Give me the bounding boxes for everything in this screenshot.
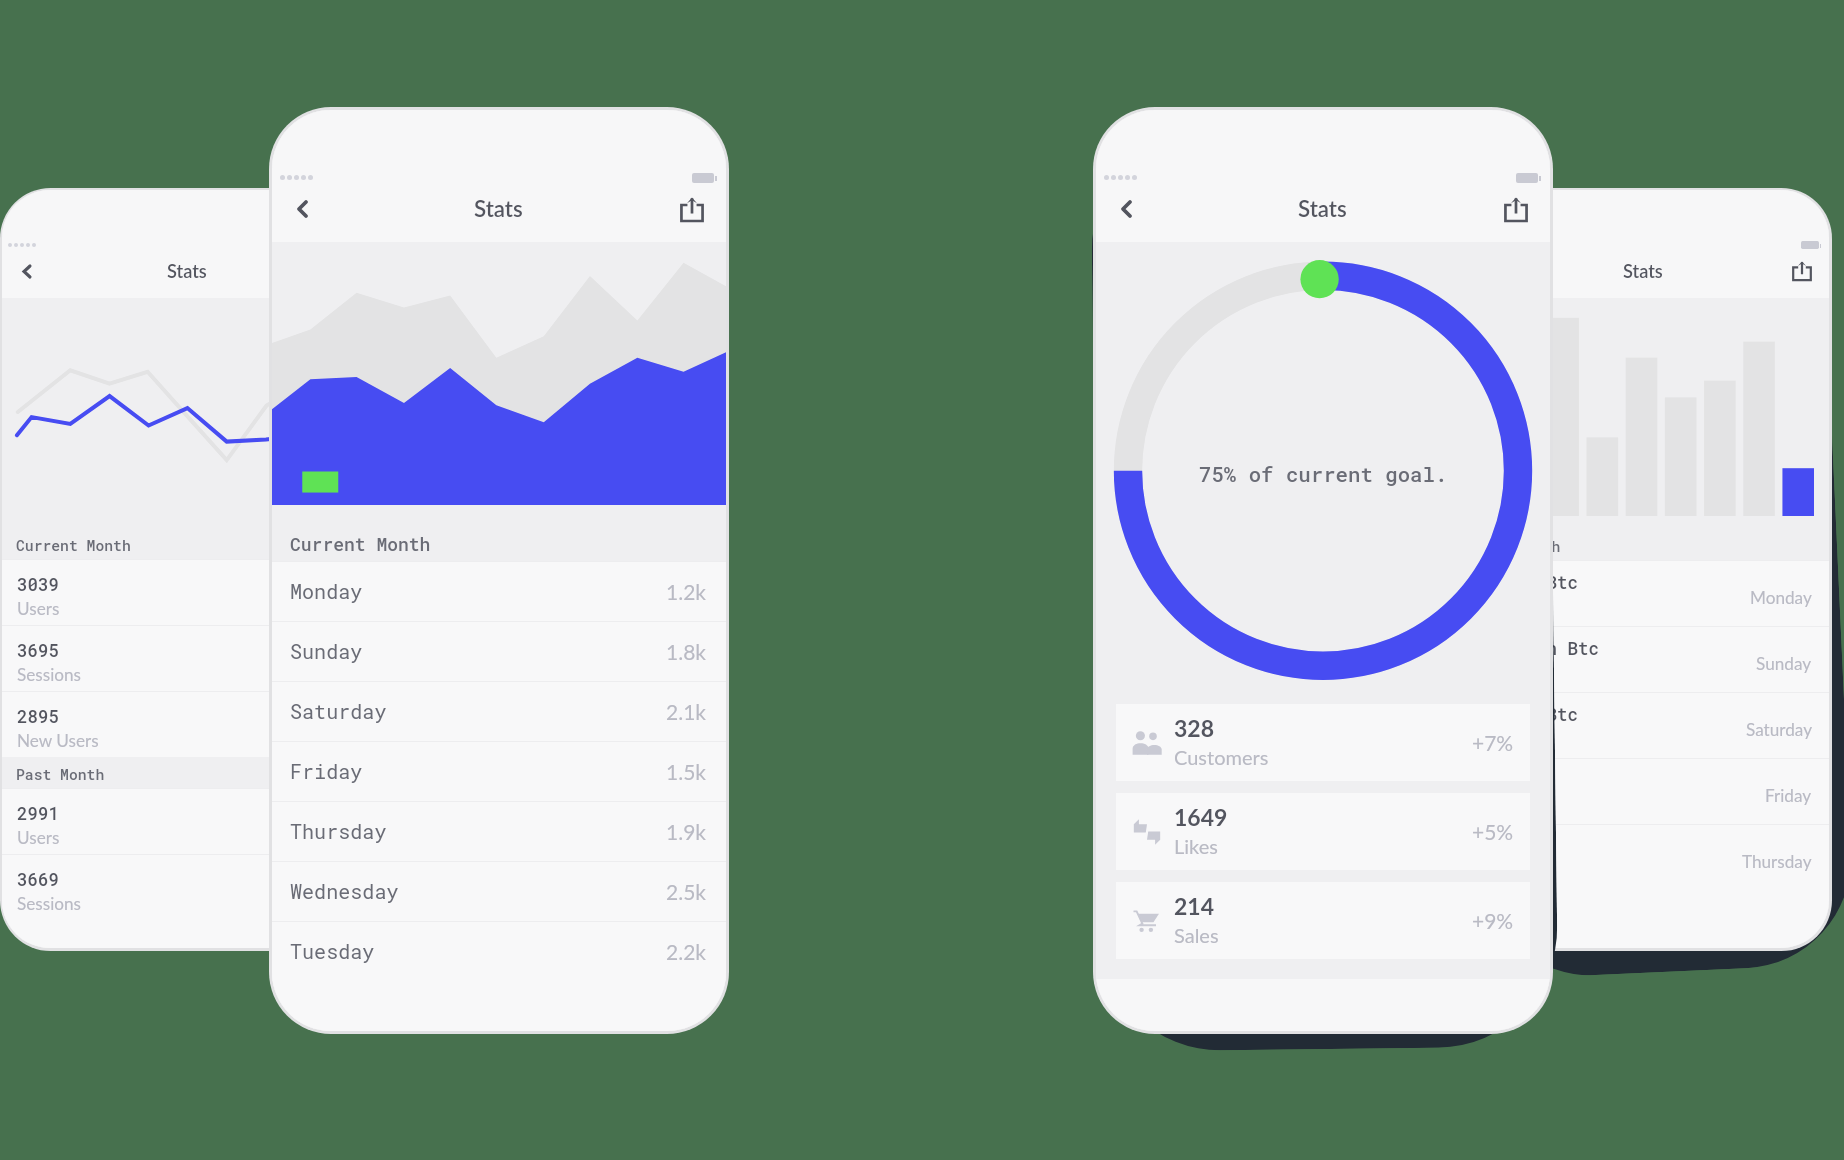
staticText: +5% [1472,819,1514,844]
button[interactable]: Friday [1458,758,1829,824]
button[interactable]: Back [8,252,46,290]
button[interactable]: Share [669,186,715,232]
staticText: Stats [474,195,523,222]
staticText: Past Month [1472,537,1561,556]
staticText: Users [17,827,60,848]
staticText: 1.9k [666,819,706,844]
staticText: Stats [167,260,207,282]
staticText: Stats [1623,260,1663,282]
staticText: +7% [1472,730,1514,755]
button[interactable]: Thursday [272,801,726,861]
staticText: 1649 [1174,803,1228,831]
button[interactable]: Sunday [272,621,726,681]
button[interactable]: Tuesday [272,921,726,981]
staticText: Likes [1174,834,1218,858]
staticText: Current Month [16,536,131,555]
staticText: 214 [1174,892,1215,920]
staticText: 2991 [17,802,59,825]
staticText: Customers [1174,745,1269,769]
staticText: 328 [1174,714,1215,742]
staticText: Sessions [17,893,82,914]
staticText: +9% [1472,908,1514,933]
button[interactable]: 0.0074 Btc [1458,692,1829,758]
button[interactable]: Back [279,186,325,232]
button[interactable]: 2895 [2,691,373,757]
staticText: 2.5k [666,879,706,904]
staticText: 1.2k [666,579,706,604]
button[interactable]: 328 [1116,704,1530,781]
staticText: 75% of current goal. [1199,460,1448,487]
staticText: Monday [290,578,363,605]
button[interactable]: Wednesday [272,861,726,921]
button[interactable]: Saturday [272,681,726,741]
button[interactable]: Friday [272,741,726,801]
staticText: 3669 [17,868,59,891]
button[interactable]: 3669 [2,854,373,920]
staticText: Wednesday [290,878,399,905]
staticText: Sales [1174,923,1219,947]
staticText: Monday [1750,587,1812,608]
staticText: Sunday [290,638,363,665]
button[interactable]: Back [1103,186,1149,232]
button[interactable]: Monday [272,561,726,621]
staticText: Saturday [290,698,387,725]
staticText: Past Month [16,765,105,784]
staticText: 1.5k [666,759,706,784]
button[interactable]: 0.0021 Btc [1458,560,1829,626]
staticText: 0.09 min Btc [1473,637,1599,660]
staticText: 2.1k [666,699,706,724]
staticText: Tuesday [290,938,375,965]
button[interactable]: 0.09 min Btc [1458,626,1829,692]
staticText: New Users [17,730,99,751]
staticText: 2.2k [666,939,706,964]
staticText: 3039 [17,573,59,596]
staticText: 2895 [17,705,59,728]
button[interactable]: Share [1783,252,1821,290]
button[interactable]: 3039 [2,559,373,625]
staticText: Saturday [1746,719,1812,740]
staticText: Thursday [290,818,387,845]
staticText: Friday [1765,785,1812,806]
staticText: Users [17,598,60,619]
staticText: Sunday [1756,653,1812,674]
staticText: Friday [290,758,363,785]
button[interactable]: Thursday [1458,824,1829,890]
staticText: 3695 [17,639,59,662]
staticText: Thursday [1742,851,1812,872]
button[interactable]: 214 [1116,882,1530,959]
staticText: Current Month [290,532,431,556]
button[interactable]: 3695 [2,625,373,691]
staticText: 0.0021 Btc [1473,571,1578,594]
button[interactable]: Share [1493,186,1539,232]
staticText: Sessions [17,664,82,685]
button[interactable]: 2991 [2,788,373,854]
staticText: 0.0074 Btc [1473,703,1578,726]
button[interactable]: 1649 [1116,793,1530,870]
staticText: 1.8k [666,639,706,664]
staticText: Stats [1298,195,1347,222]
